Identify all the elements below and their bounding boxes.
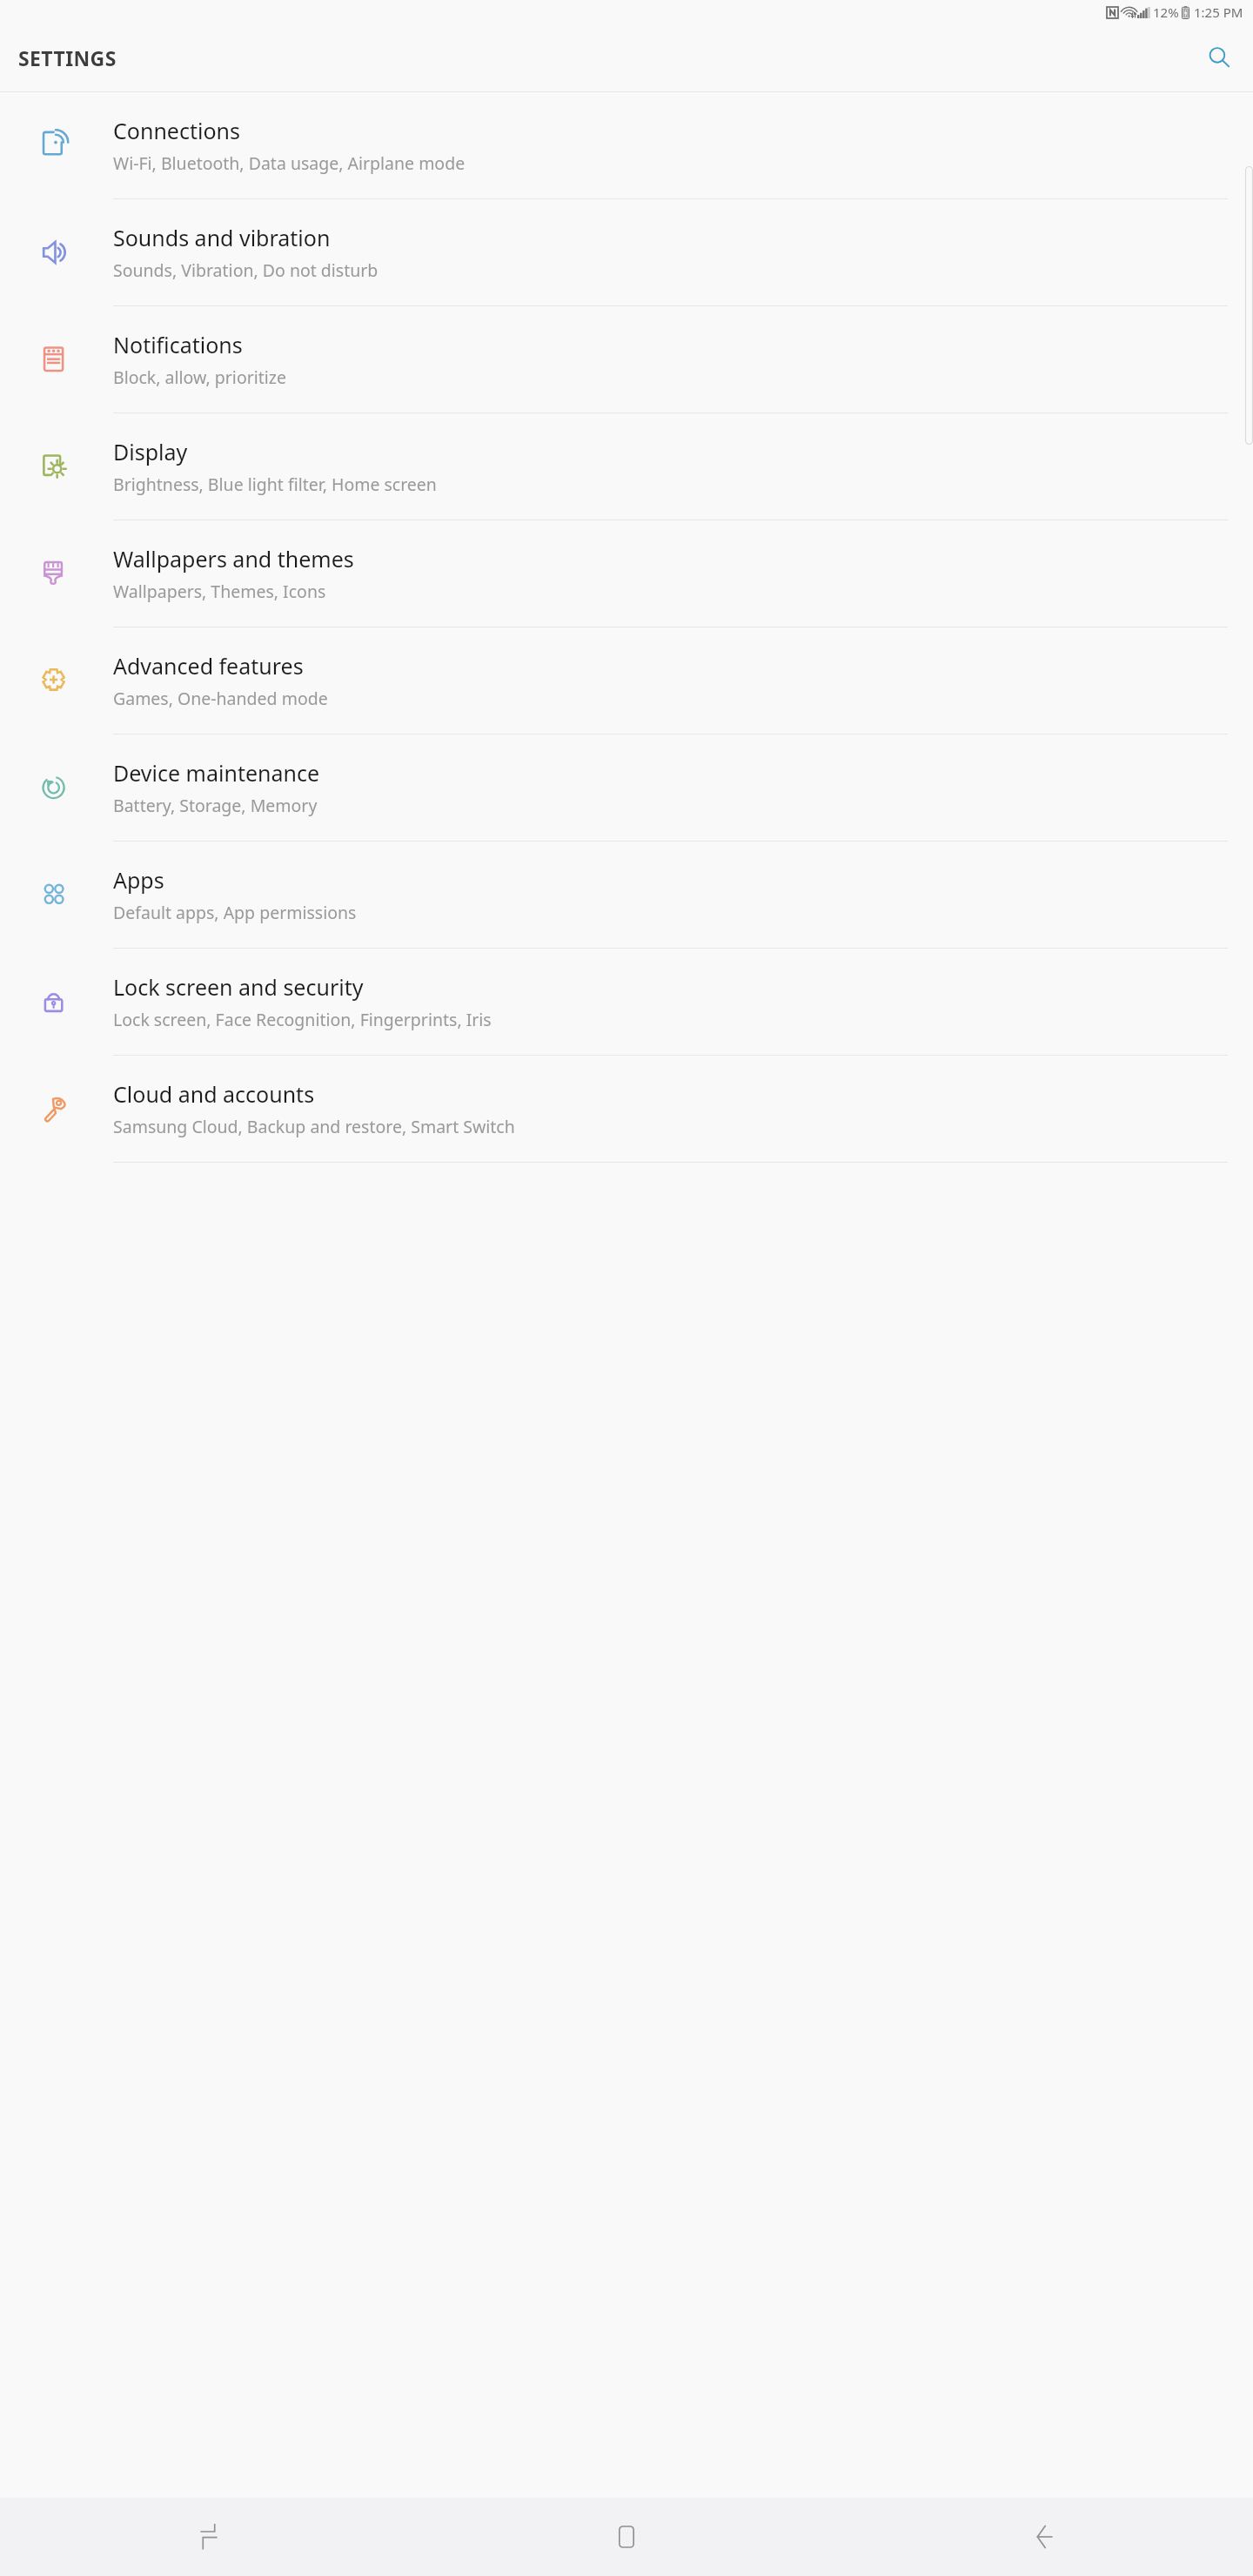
staticText: Block, allow, prioritize (113, 366, 287, 389)
staticText: Notifications (113, 330, 243, 359)
button[interactable]: Connections (0, 92, 1253, 199)
staticText: Lock screen, Face Recognition, Fingerpri… (113, 1008, 492, 1031)
button[interactable]: Back (835, 2498, 1253, 2576)
staticText: Sounds, Vibration, Do not disturb (113, 258, 379, 282)
button[interactable]: Apps (0, 842, 1253, 949)
staticText: Brightness, Blue light filter, Home scre… (113, 473, 437, 496)
staticText: Connections (113, 116, 240, 145)
staticText: Advanced features (113, 651, 304, 681)
button[interactable]: Wallpapers and themes (0, 520, 1253, 627)
button[interactable]: Cloud and accounts (0, 1056, 1253, 1163)
staticText: Games, One-handed mode (113, 687, 328, 710)
staticText: 1:25 PM (1194, 3, 1243, 21)
staticText: SETTINGS (18, 44, 117, 71)
button[interactable]: Notifications (0, 306, 1253, 413)
staticText: Default apps, App permissions (113, 901, 357, 924)
staticText: Battery, Storage, Memory (113, 794, 318, 817)
button[interactable]: Advanced features (0, 627, 1253, 735)
staticText: Samsung Cloud, Backup and restore, Smart… (113, 1115, 515, 1138)
staticText: Sounds and vibration (113, 223, 331, 252)
button[interactable]: Lock screen and security (0, 949, 1253, 1056)
staticText: Wallpapers and themes (113, 544, 354, 574)
button[interactable]: Device maintenance (0, 735, 1253, 842)
staticText: Lock screen and security (113, 972, 364, 1002)
button[interactable]: Recents (0, 2498, 418, 2576)
button[interactable]: Search (1197, 36, 1241, 79)
staticText: Display (113, 437, 188, 466)
staticText: Cloud and accounts (113, 1079, 315, 1109)
staticText: Device maintenance (113, 758, 320, 788)
staticText: Wi-Fi, Bluetooth, Data usage, Airplane m… (113, 151, 466, 175)
staticText: 12% (1153, 3, 1179, 21)
staticText: Apps (113, 865, 164, 895)
button[interactable]: Display (0, 413, 1253, 520)
button[interactable]: Sounds and vibration (0, 199, 1253, 306)
button[interactable]: Home (418, 2498, 835, 2576)
staticText: Wallpapers, Themes, Icons (113, 580, 326, 603)
